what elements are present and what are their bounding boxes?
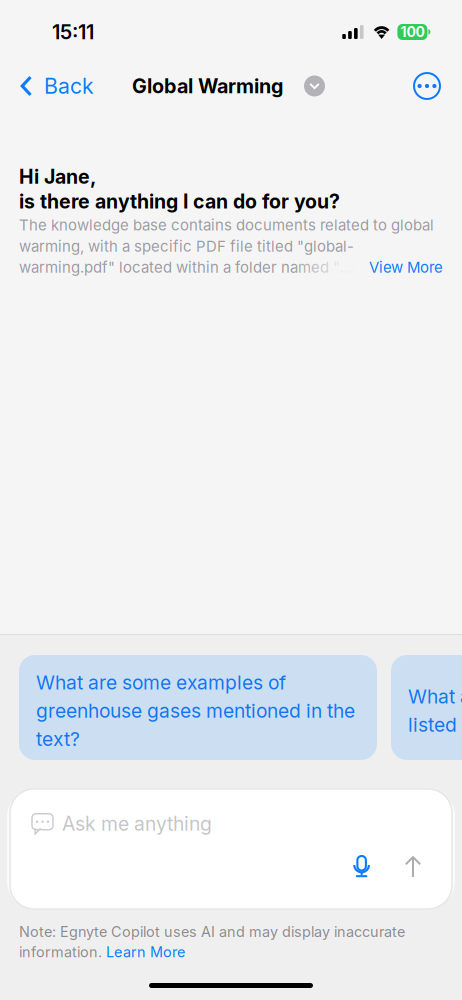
- button[interactable]: Learn More: [106, 943, 185, 961]
- staticText: Hi Jane,: [19, 165, 96, 189]
- button[interactable]: What are some examples of: [19, 655, 377, 760]
- button[interactable]: Voice input: [344, 851, 380, 883]
- staticText: 15:11: [52, 20, 94, 44]
- staticText: The knowledge base contains documents re…: [19, 216, 434, 234]
- staticText: What are the chemicals: [408, 685, 462, 708]
- staticText: listed for the greenhouse: [408, 713, 462, 736]
- staticText: information.: [19, 943, 102, 961]
- button[interactable]: View More: [369, 258, 443, 276]
- staticText: Back: [44, 73, 94, 99]
- button[interactable]: Send: [396, 851, 430, 883]
- staticText: is there anything I can do for you?: [19, 190, 340, 213]
- staticText: text?: [36, 727, 80, 751]
- staticText: Global Warming: [132, 74, 283, 98]
- staticText: 100: [400, 23, 424, 40]
- button[interactable]: Global Warming: [132, 62, 325, 110]
- button[interactable]: Back: [0, 62, 102, 110]
- staticText: View More: [369, 258, 443, 276]
- staticText: Ask me anything: [62, 812, 212, 835]
- staticText: greenhouse gases mentioned in the: [36, 699, 355, 722]
- button[interactable]: What are the chemicals: [391, 655, 462, 760]
- staticText: What are some examples of: [36, 671, 286, 694]
- staticText: warming, with a specific PDF file titled…: [19, 237, 354, 255]
- staticText: Learn More: [106, 943, 185, 961]
- button[interactable]: More options: [405, 64, 449, 108]
- staticText: Note: Egnyte Copilot uses AI and may dis…: [19, 923, 405, 940]
- staticText: warming.pdf" located within a folder nam…: [19, 258, 361, 276]
